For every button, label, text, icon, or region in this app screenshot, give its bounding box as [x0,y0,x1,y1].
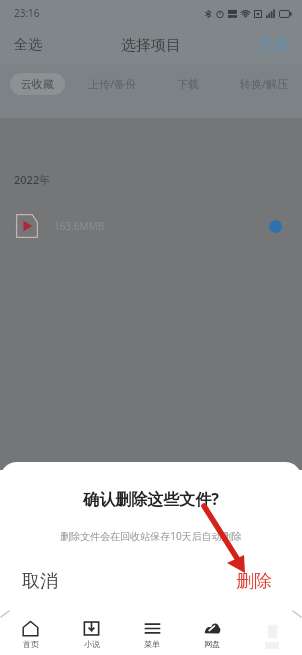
button[interactable]: 小说 [61,618,122,651]
staticText: 云收藏 [21,77,54,91]
staticText: 确认删除这些文件? [83,488,219,510]
staticText: 上传/备份 [88,76,137,91]
button[interactable]: More [242,621,302,651]
button[interactable]: 转换/解压 [229,72,300,95]
staticText: 删除 [236,570,272,593]
staticText: 23:16 [14,6,40,20]
staticText: 下载 [177,77,199,91]
button[interactable]: 下载 [166,73,210,95]
staticText: 首页 [23,639,39,649]
button[interactable]: 云收藏 [10,73,65,95]
button[interactable]: 首页 [0,618,61,651]
button[interactable]: 菜单 [122,618,182,651]
staticText: 完成 [260,36,288,54]
staticText: 选择项目 [121,36,181,55]
button[interactable]: 上传/备份 [77,72,148,95]
staticText: 删除文件会在回收站保存10天后自动删除 [60,529,242,543]
staticText: 转换/解压 [240,76,289,91]
button[interactable]: 完成 [246,30,302,60]
staticText: 小说 [84,639,100,649]
staticText: 网盘 [204,639,220,649]
button[interactable]: 取消 [0,561,151,601]
staticText: 菜单 [144,639,160,649]
button[interactable]: 删除 [151,561,302,601]
button[interactable]: Selected [262,213,288,239]
staticText: 163.6MMB [54,219,105,233]
button[interactable]: 163.6MMB [0,203,302,249]
button[interactable]: 网盘 [182,618,242,651]
staticText: 全选 [14,36,42,54]
staticText: 取消 [22,570,58,593]
button[interactable]: 全选 [0,30,56,60]
staticText: 2022年 [14,172,51,187]
